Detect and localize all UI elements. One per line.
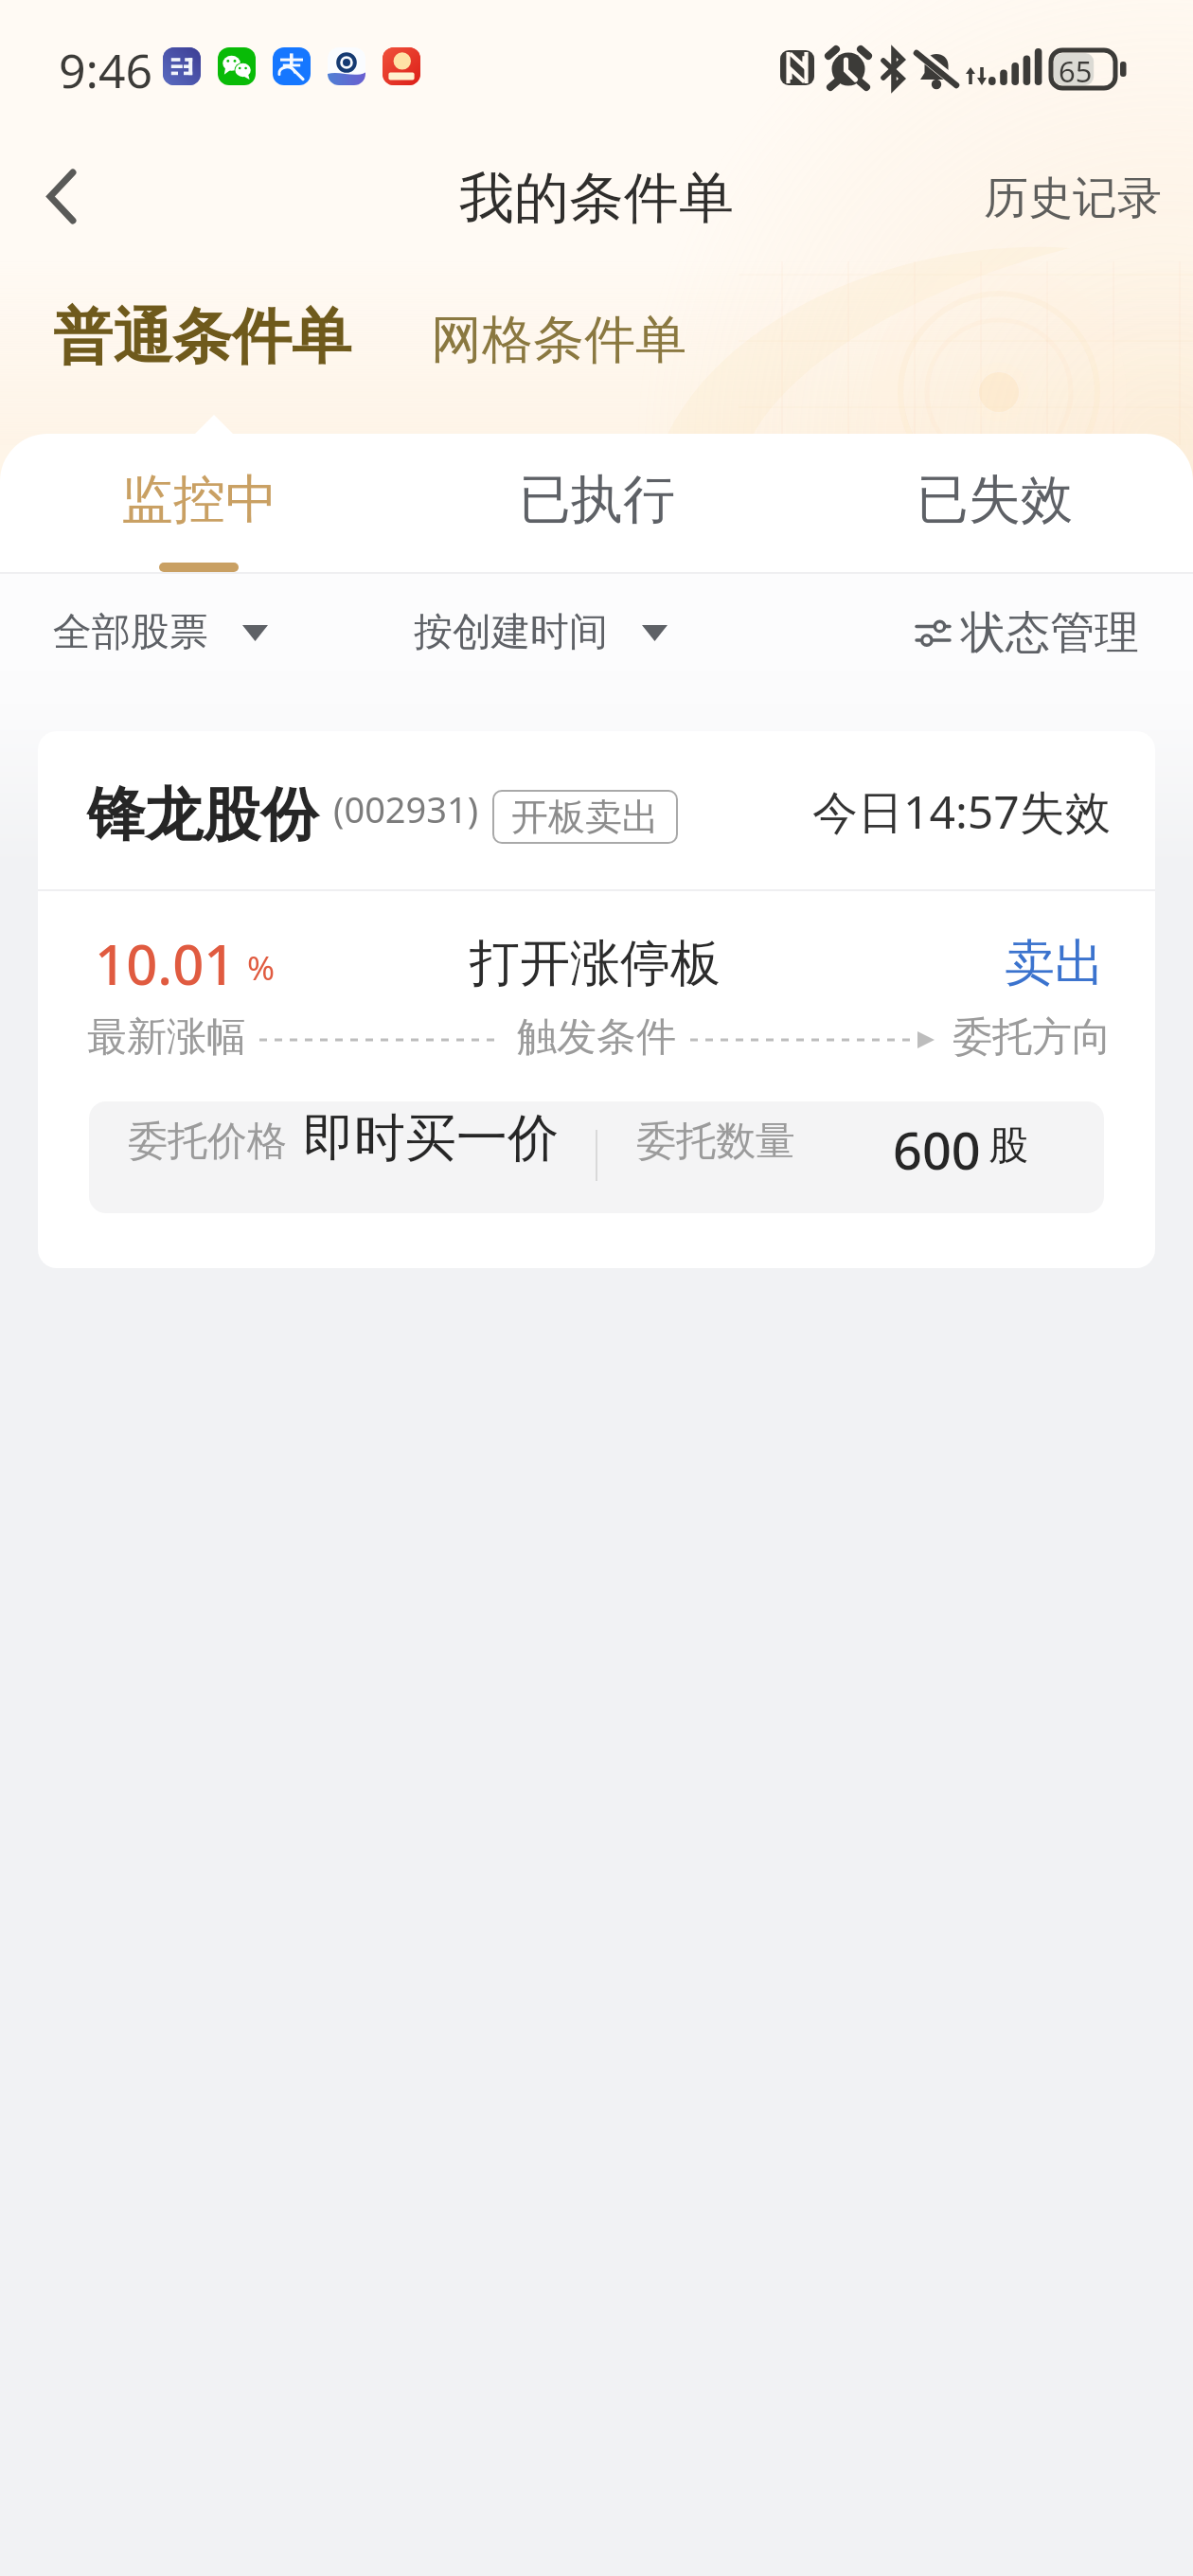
staticText: 股 — [988, 1121, 1028, 1172]
button[interactable]: 监控中 — [0, 434, 398, 574]
staticText: 10.01 — [95, 926, 236, 1001]
staticText: 我的条件单 — [459, 164, 734, 233]
staticText: 即时买一价 — [303, 1106, 559, 1171]
button[interactable]: Back — [17, 153, 102, 239]
button[interactable]: 状态管理 — [917, 605, 1139, 661]
staticText: 打开涨停板 — [470, 932, 721, 995]
staticText: 委托数量 — [636, 1117, 795, 1167]
staticText: 已失效 — [917, 467, 1073, 532]
button[interactable]: 历史记录 — [965, 159, 1181, 238]
staticText: 今日14:57失效 — [812, 780, 1111, 843]
staticText: 卖出 — [1005, 932, 1105, 995]
staticText: 网格条件单 — [431, 308, 686, 372]
staticText: 9:46 — [59, 38, 153, 102]
button[interactable]: 已失效 — [795, 434, 1193, 574]
staticText: 委托价格 — [128, 1117, 287, 1167]
staticText: 65 — [1059, 51, 1093, 91]
staticText: 委托方向 — [953, 1012, 1112, 1063]
staticText: % — [247, 945, 276, 991]
staticText: 普通条件单 — [53, 299, 351, 374]
staticText: 最新涨幅 — [87, 1012, 246, 1063]
staticText: 600 — [893, 1115, 981, 1185]
staticText: 触发条件 — [517, 1012, 676, 1063]
button[interactable]: 已执行 — [398, 434, 795, 574]
staticText: 历史记录 — [984, 170, 1162, 226]
staticText: 按创建时间 — [414, 608, 608, 657]
staticText: 开板卖出 — [511, 794, 659, 840]
staticText: 监控中 — [121, 467, 277, 532]
button[interactable]: 网格条件单 — [412, 293, 705, 387]
staticText: 全部股票 — [53, 608, 208, 657]
staticText: 已执行 — [519, 467, 675, 532]
button[interactable]: 锋龙股份 — [38, 731, 1155, 1268]
staticText: 锋龙股份 — [87, 778, 318, 851]
button[interactable]: 普通条件单 — [34, 284, 370, 389]
button[interactable]: 全部股票 — [53, 608, 268, 657]
staticText: 状态管理 — [961, 605, 1139, 661]
staticText: (002931) — [333, 784, 479, 833]
button[interactable]: 按创建时间 — [414, 608, 668, 657]
